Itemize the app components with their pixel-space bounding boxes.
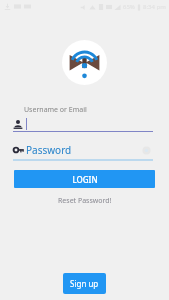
staticText: Reset Password!	[58, 196, 112, 206]
other: Profile avatar	[62, 40, 107, 85]
button[interactable]: Reset Password!	[0, 194, 169, 208]
other: Username	[13, 119, 23, 129]
staticText: Sign up	[70, 278, 99, 289]
staticText: LOGIN	[72, 174, 98, 185]
other: Show password	[142, 146, 151, 155]
other: Password	[13, 146, 24, 154]
staticText: 65%	[123, 3, 135, 11]
button[interactable]: Sign up	[63, 273, 106, 294]
staticText: Password	[26, 143, 72, 157]
button[interactable]: LOGIN	[14, 170, 155, 188]
staticText: Username or Email	[24, 105, 87, 115]
staticText: 8:34 pm	[143, 3, 166, 11]
